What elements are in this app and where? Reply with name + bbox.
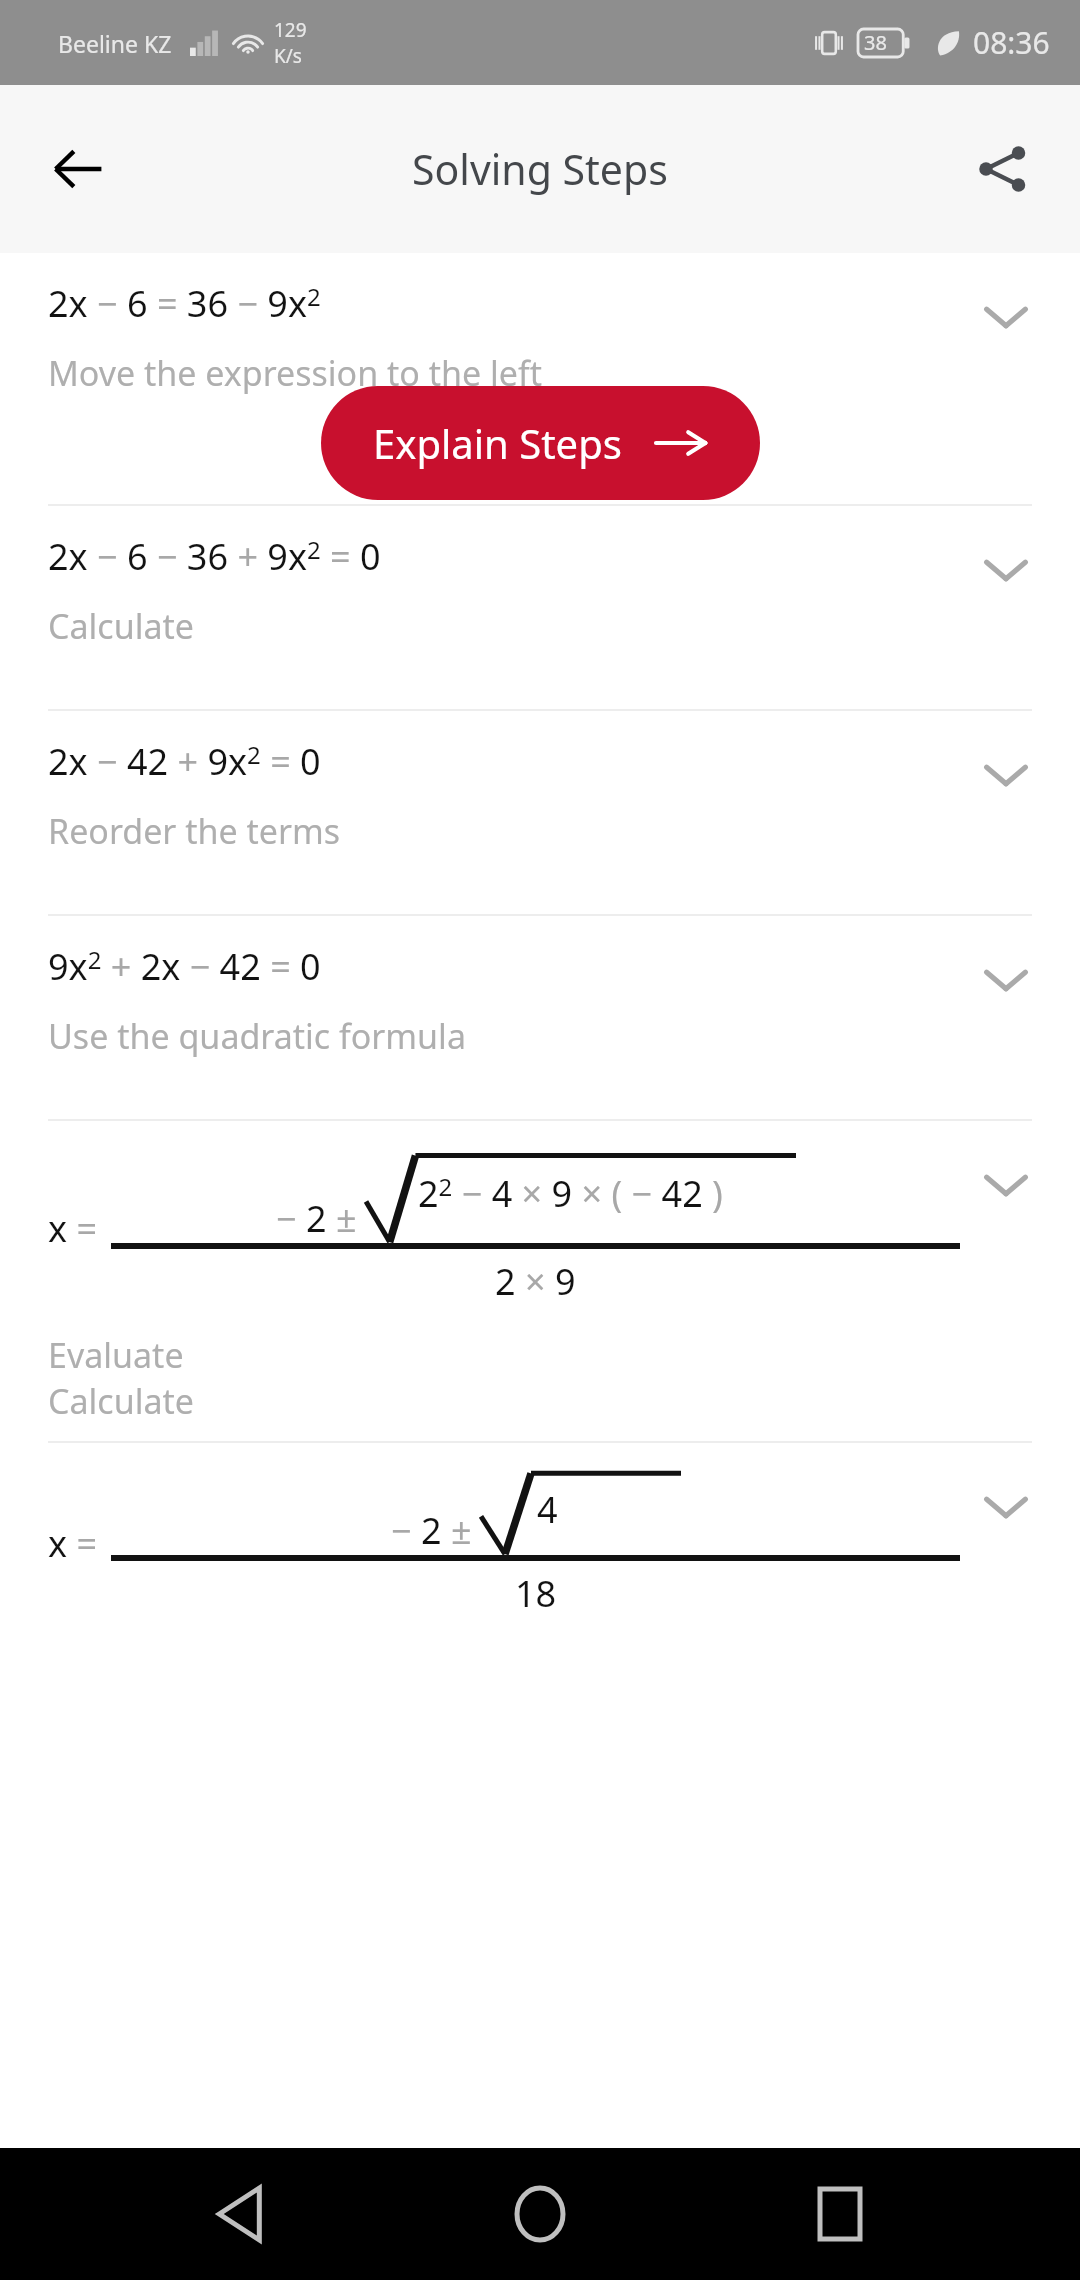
staticText: 129: [274, 17, 307, 43]
staticText: Move the expression to the left: [48, 350, 542, 396]
staticText: 2x − 42 + 9x2 = 0: [48, 737, 321, 786]
staticText: Evaluate: [48, 1332, 184, 1378]
button[interactable]: Expand step: [962, 936, 1050, 1024]
button[interactable]: Expand step: [962, 1463, 1050, 1551]
staticText: 08:36: [973, 22, 1050, 63]
staticText: Beeline KZ: [58, 28, 172, 59]
staticText: K/s: [274, 43, 302, 69]
staticText: 38: [864, 29, 887, 56]
staticText: 2x − 6 − 36 + 9x2 = 0: [48, 532, 381, 581]
staticText: Solving Steps: [412, 141, 668, 197]
button[interactable]: Home: [480, 2154, 600, 2274]
staticText: − 2 ±: [391, 1506, 481, 1555]
staticText: 2 × 9: [495, 1257, 576, 1306]
button[interactable]: 2x − 6 = 36 − 9x2: [0, 253, 1080, 506]
button[interactable]: Back: [180, 2154, 300, 2274]
staticText: Explain Steps: [373, 416, 622, 470]
staticText: − 2 ±: [276, 1194, 366, 1243]
staticText: Calculate: [48, 1378, 194, 1424]
button[interactable]: Expand step: [962, 526, 1050, 614]
button[interactable]: Back: [30, 121, 126, 217]
button[interactable]: 2x − 42 + 9x2 = 0: [0, 711, 1080, 916]
button[interactable]: 9x2 + 2x − 42 = 0: [0, 916, 1080, 1121]
button[interactable]: Expand step: [962, 273, 1050, 361]
staticText: x =: [48, 1204, 97, 1253]
button[interactable]: Expand step: [962, 731, 1050, 819]
staticText: 18: [515, 1569, 557, 1618]
staticText: Reorder the terms: [48, 808, 341, 854]
button[interactable]: Share: [954, 121, 1050, 217]
button[interactable]: x =: [0, 1443, 1080, 1633]
staticText: 22 − 4 × 9 × ( − 42 ): [418, 1169, 723, 1218]
staticText: 9x2 + 2x − 42 = 0: [48, 942, 321, 991]
button[interactable]: Explain Steps: [321, 386, 760, 500]
button[interactable]: x =: [0, 1121, 1080, 1443]
staticText: Calculate: [48, 603, 194, 649]
staticText: 4: [537, 1485, 558, 1534]
staticText: Use the quadratic formula: [48, 1013, 466, 1059]
button[interactable]: Recent apps: [780, 2154, 900, 2274]
button[interactable]: 2x − 6 − 36 + 9x2 = 0: [0, 506, 1080, 711]
button[interactable]: Expand step: [962, 1141, 1050, 1229]
staticText: 2x − 6 = 36 − 9x2: [48, 279, 321, 328]
staticText: x =: [48, 1519, 97, 1568]
